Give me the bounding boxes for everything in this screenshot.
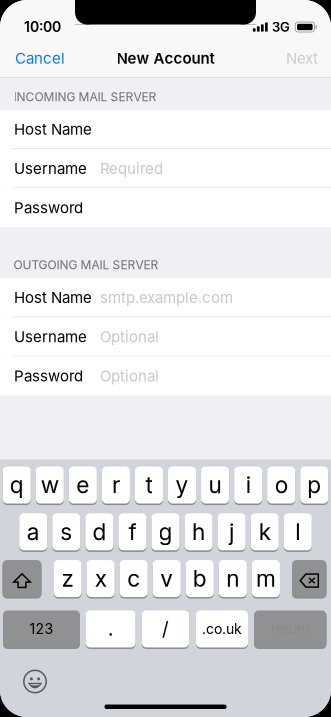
staticText: t [145,471,152,499]
button[interactable]: Cancel [0,39,75,78]
staticText: Username [14,328,87,346]
staticText: Next [286,49,318,67]
button[interactable]: h [185,513,213,551]
staticText: w [41,471,59,499]
staticText: s [60,518,72,546]
staticText: v [160,565,173,592]
button[interactable]: Host Name [0,278,331,317]
button[interactable]: .co.uk [196,610,248,648]
button[interactable]: w [36,466,64,504]
button[interactable]: t [135,466,163,504]
staticText: n [226,565,239,592]
staticText: j [229,518,234,546]
button[interactable]: d [85,513,113,551]
button[interactable]: f [118,513,146,551]
staticText: f [128,518,136,546]
button[interactable]: Password [0,356,331,395]
button[interactable]: / [142,610,189,648]
staticText: p [307,471,321,499]
staticText: y [175,471,188,499]
staticText: Required [100,159,163,178]
button[interactable]: o [267,466,295,504]
staticText: Host Name [14,288,92,306]
staticText: Optional [100,367,159,385]
staticText: g [158,518,172,546]
button[interactable]: v [153,559,181,598]
button[interactable]: n [219,559,247,598]
staticText: INCOMING MAIL SERVER [13,90,156,104]
button[interactable]: e [69,466,97,504]
staticText: Password [14,199,83,217]
button[interactable]: Next [276,39,331,78]
staticText: c [127,565,140,592]
button[interactable]: Username [0,149,331,188]
staticText: x [95,565,107,592]
button[interactable]: m [252,559,280,598]
button[interactable]: Host Name [0,110,331,149]
staticText: h [192,518,205,546]
staticText: q [10,471,24,499]
button[interactable]: b [186,559,214,598]
staticText: a [27,518,40,546]
button[interactable]: 123 [3,610,80,648]
button[interactable]: g [151,513,179,551]
button[interactable]: y [168,466,196,504]
staticText: Password [14,367,83,385]
staticText: Username [14,159,87,178]
button[interactable]: p [300,466,328,504]
staticText: . [108,617,113,640]
staticText: d [92,518,106,546]
staticText: o [275,471,288,499]
button[interactable]: Shift [2,559,41,598]
staticText: k [259,518,271,546]
button[interactable]: z [54,559,82,598]
staticText: 3G [272,19,290,35]
button[interactable]: s [52,513,80,551]
staticText: e [76,471,89,499]
button[interactable]: Delete [292,559,326,598]
button[interactable]: Password [0,188,331,227]
button[interactable]: return [254,610,326,648]
button[interactable]: l [284,513,312,551]
staticText: smtp.example.com [100,288,233,306]
button[interactable]: k [251,513,279,551]
staticText: z [62,565,74,592]
button[interactable]: . [85,610,135,648]
button[interactable]: i [234,466,262,504]
staticText: b [193,565,207,592]
staticText: r [112,471,120,499]
staticText: u [209,471,222,499]
button[interactable]: r [102,466,130,504]
staticText: Cancel [15,49,65,67]
button[interactable]: j [218,513,246,551]
staticText: l [295,518,300,546]
button[interactable]: u [201,466,229,504]
staticText: Host Name [14,120,92,138]
button[interactable]: a [19,513,47,551]
staticText: OUTGOING MAIL SERVER [13,258,158,272]
button[interactable]: q [3,466,31,504]
staticText: Optional [100,328,159,346]
staticText: 123 [29,620,53,637]
staticText: .co.uk [202,620,242,637]
staticText: 10:00 [24,18,61,35]
button[interactable]: Username [0,317,331,356]
staticText: i [246,471,251,499]
button[interactable]: x [87,559,115,598]
staticText: m [256,565,276,592]
button[interactable]: Emoji keyboard [17,663,53,699]
staticText: / [162,617,169,640]
button[interactable]: c [120,559,148,598]
staticText: New Account [116,49,214,67]
